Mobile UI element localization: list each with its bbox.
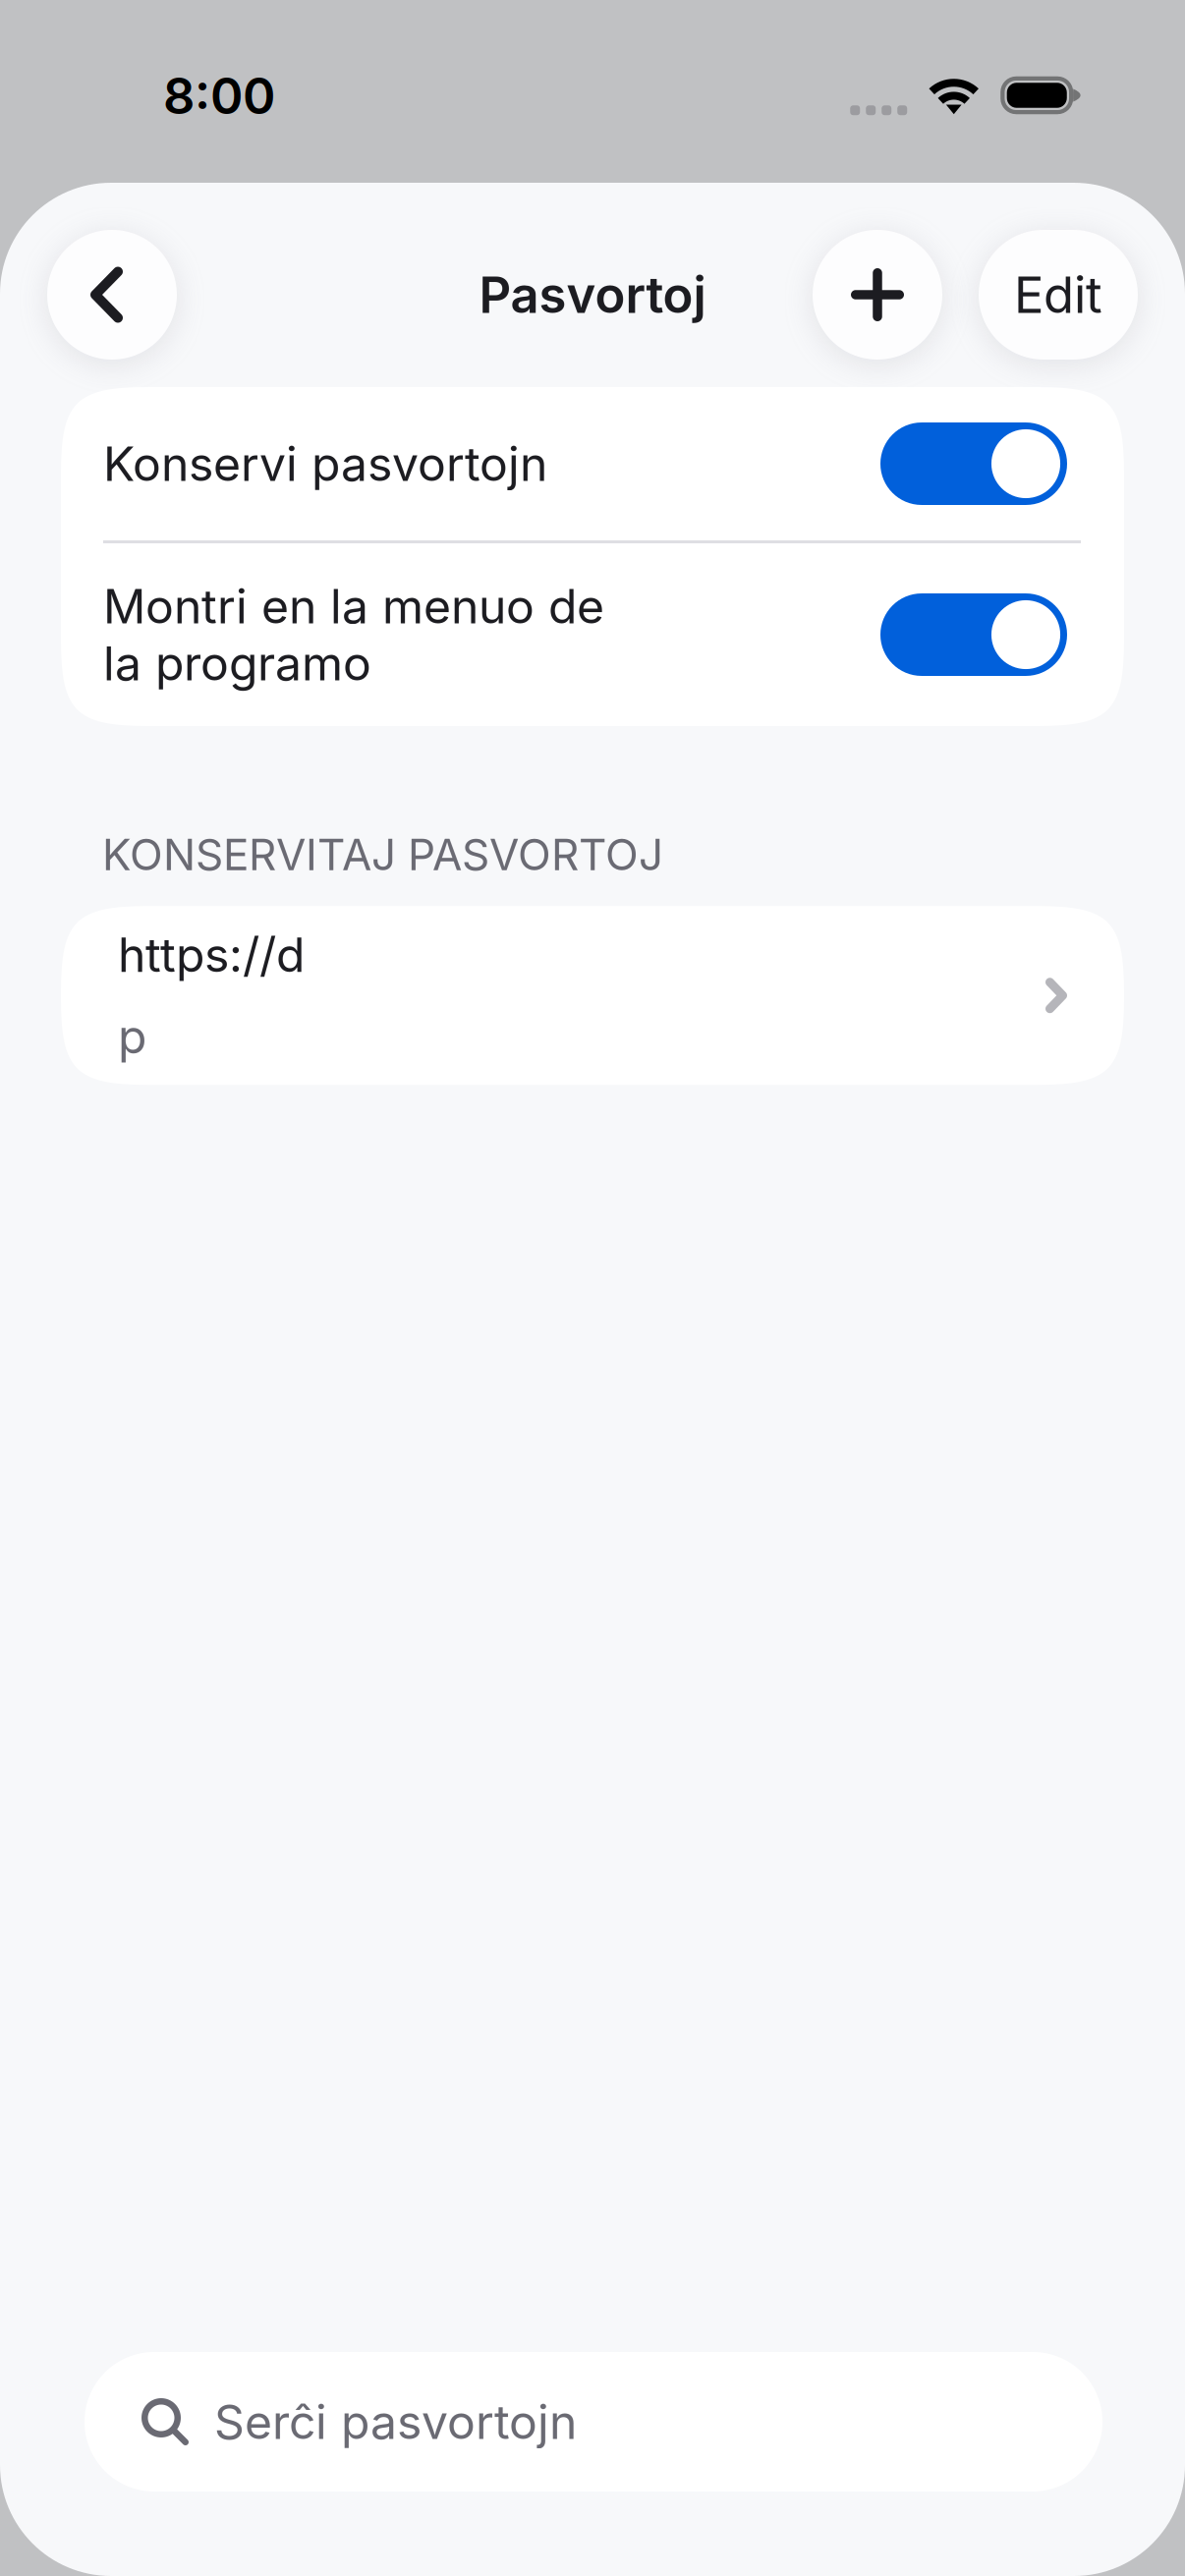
button[interactable]: Edit (979, 230, 1138, 360)
staticText: Konservi pasvortojn (103, 435, 547, 492)
staticText: 8:00 (163, 66, 275, 126)
staticText: KONSERVITAJ PASVORTOJ (102, 828, 663, 880)
button[interactable]: Montri en la menuo de la programo (61, 543, 1124, 726)
staticText: Pasvortoj (479, 265, 706, 325)
button[interactable]: Serĉi pasvortojn (85, 2352, 1102, 2492)
staticText: p (118, 1008, 146, 1065)
button[interactable]: Konservi pasvortojn (61, 387, 1124, 540)
staticText: Montri en la menuo de la programo (103, 578, 604, 692)
button[interactable]: Back (47, 230, 177, 360)
staticText: https://d (118, 926, 305, 983)
button[interactable]: https://d (61, 906, 1124, 1085)
staticText: Serĉi pasvortojn (214, 2393, 577, 2450)
staticText: Edit (1014, 265, 1102, 325)
button[interactable]: Add password (813, 230, 942, 360)
